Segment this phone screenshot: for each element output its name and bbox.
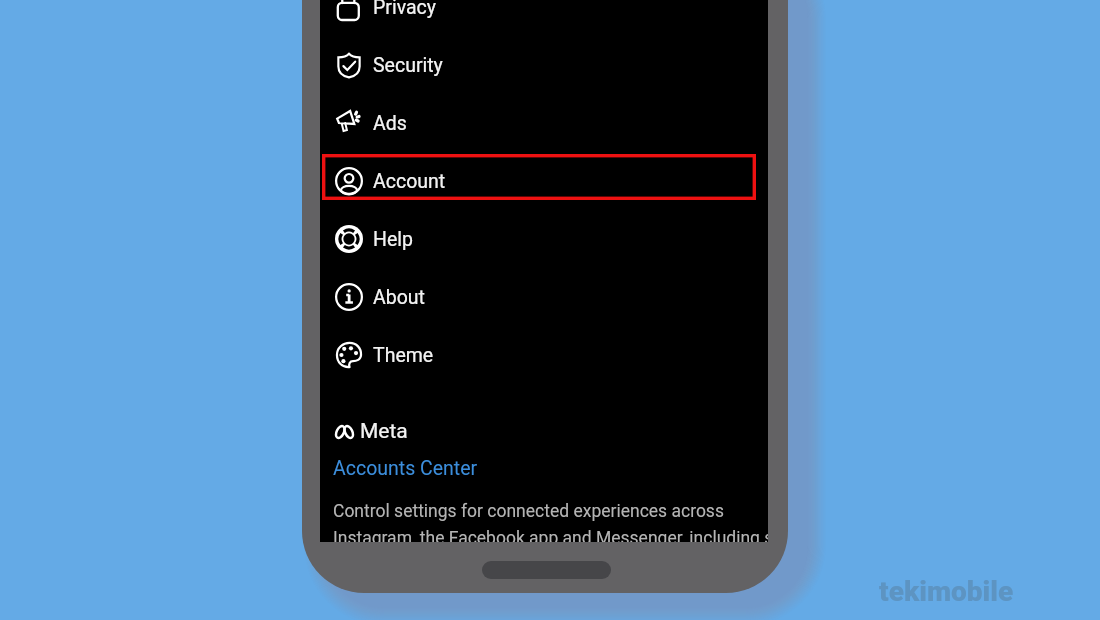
staticText: tekimobile (879, 575, 1014, 608)
staticText: Security (373, 54, 443, 77)
button[interactable]: Privacy (320, 0, 768, 36)
staticText: Theme (373, 344, 434, 367)
button[interactable]: About (320, 268, 768, 326)
button[interactable]: Ads (320, 94, 768, 152)
staticText: Ads (373, 112, 407, 135)
button[interactable]: Account (320, 152, 768, 210)
staticText: About (373, 286, 425, 309)
button[interactable]: Theme (320, 326, 768, 384)
button[interactable]: Security (320, 36, 768, 94)
staticText: Privacy (373, 0, 436, 19)
staticText: Help (373, 228, 413, 251)
staticText: Meta (360, 419, 408, 444)
button[interactable]: Accounts Center (333, 457, 478, 480)
button[interactable]: Help (320, 210, 768, 268)
staticText: Accounts Center (333, 457, 478, 480)
staticText: Account (373, 170, 446, 193)
staticText: Control settings for connected experienc… (333, 501, 768, 542)
